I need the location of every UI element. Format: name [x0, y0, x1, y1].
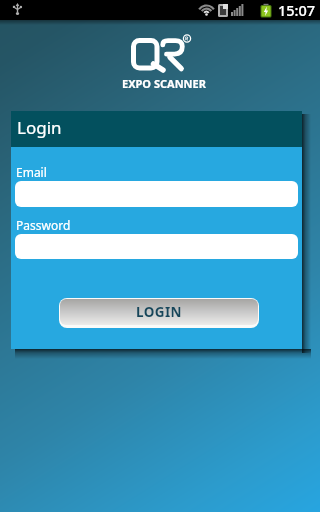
staticText: EXPO SCANNER [122, 76, 206, 91]
button[interactable]: LOGIN [59, 298, 259, 328]
staticText: 15:07 [278, 0, 316, 20]
staticText: Login [17, 116, 62, 139]
button[interactable] [15, 181, 298, 207]
staticText: Password [16, 217, 71, 233]
button[interactable] [15, 234, 298, 259]
staticText: Email [16, 164, 47, 180]
staticText: LOGIN [136, 303, 182, 321]
